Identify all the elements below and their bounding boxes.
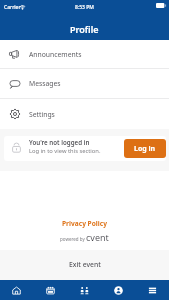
- button[interactable]: Schedule: [33, 280, 67, 300]
- staticText: cvent: [86, 231, 109, 243]
- staticText: Log in: [134, 144, 156, 154]
- staticText: You're not logged in: [29, 138, 90, 146]
- staticText: powered by: [60, 236, 85, 242]
- button[interactable]: Exit event: [0, 250, 169, 280]
- staticText: Announcements: [29, 50, 82, 59]
- staticText: Carrier: [4, 4, 21, 11]
- button[interactable]: Home: [0, 280, 33, 300]
- button[interactable]: Attendees: [67, 280, 101, 300]
- button[interactable]: You're not logged in: [4, 136, 166, 161]
- staticText: Log in to view this section.: [29, 147, 101, 155]
- button[interactable]: More: [135, 280, 169, 300]
- button[interactable]: Settings: [0, 99, 169, 129]
- staticText: Messages: [29, 79, 61, 88]
- button[interactable]: Privacy Policy: [62, 219, 107, 228]
- button[interactable]: Announcements: [0, 40, 169, 68]
- staticText: Settings: [29, 110, 55, 119]
- button[interactable]: Messages: [0, 69, 169, 98]
- button[interactable]: Profile: [101, 280, 135, 300]
- staticText: Profile: [70, 23, 99, 35]
- staticText: 8:53 PM: [75, 4, 94, 11]
- staticText: Exit event: [69, 260, 101, 269]
- button[interactable]: Log in: [124, 139, 166, 158]
